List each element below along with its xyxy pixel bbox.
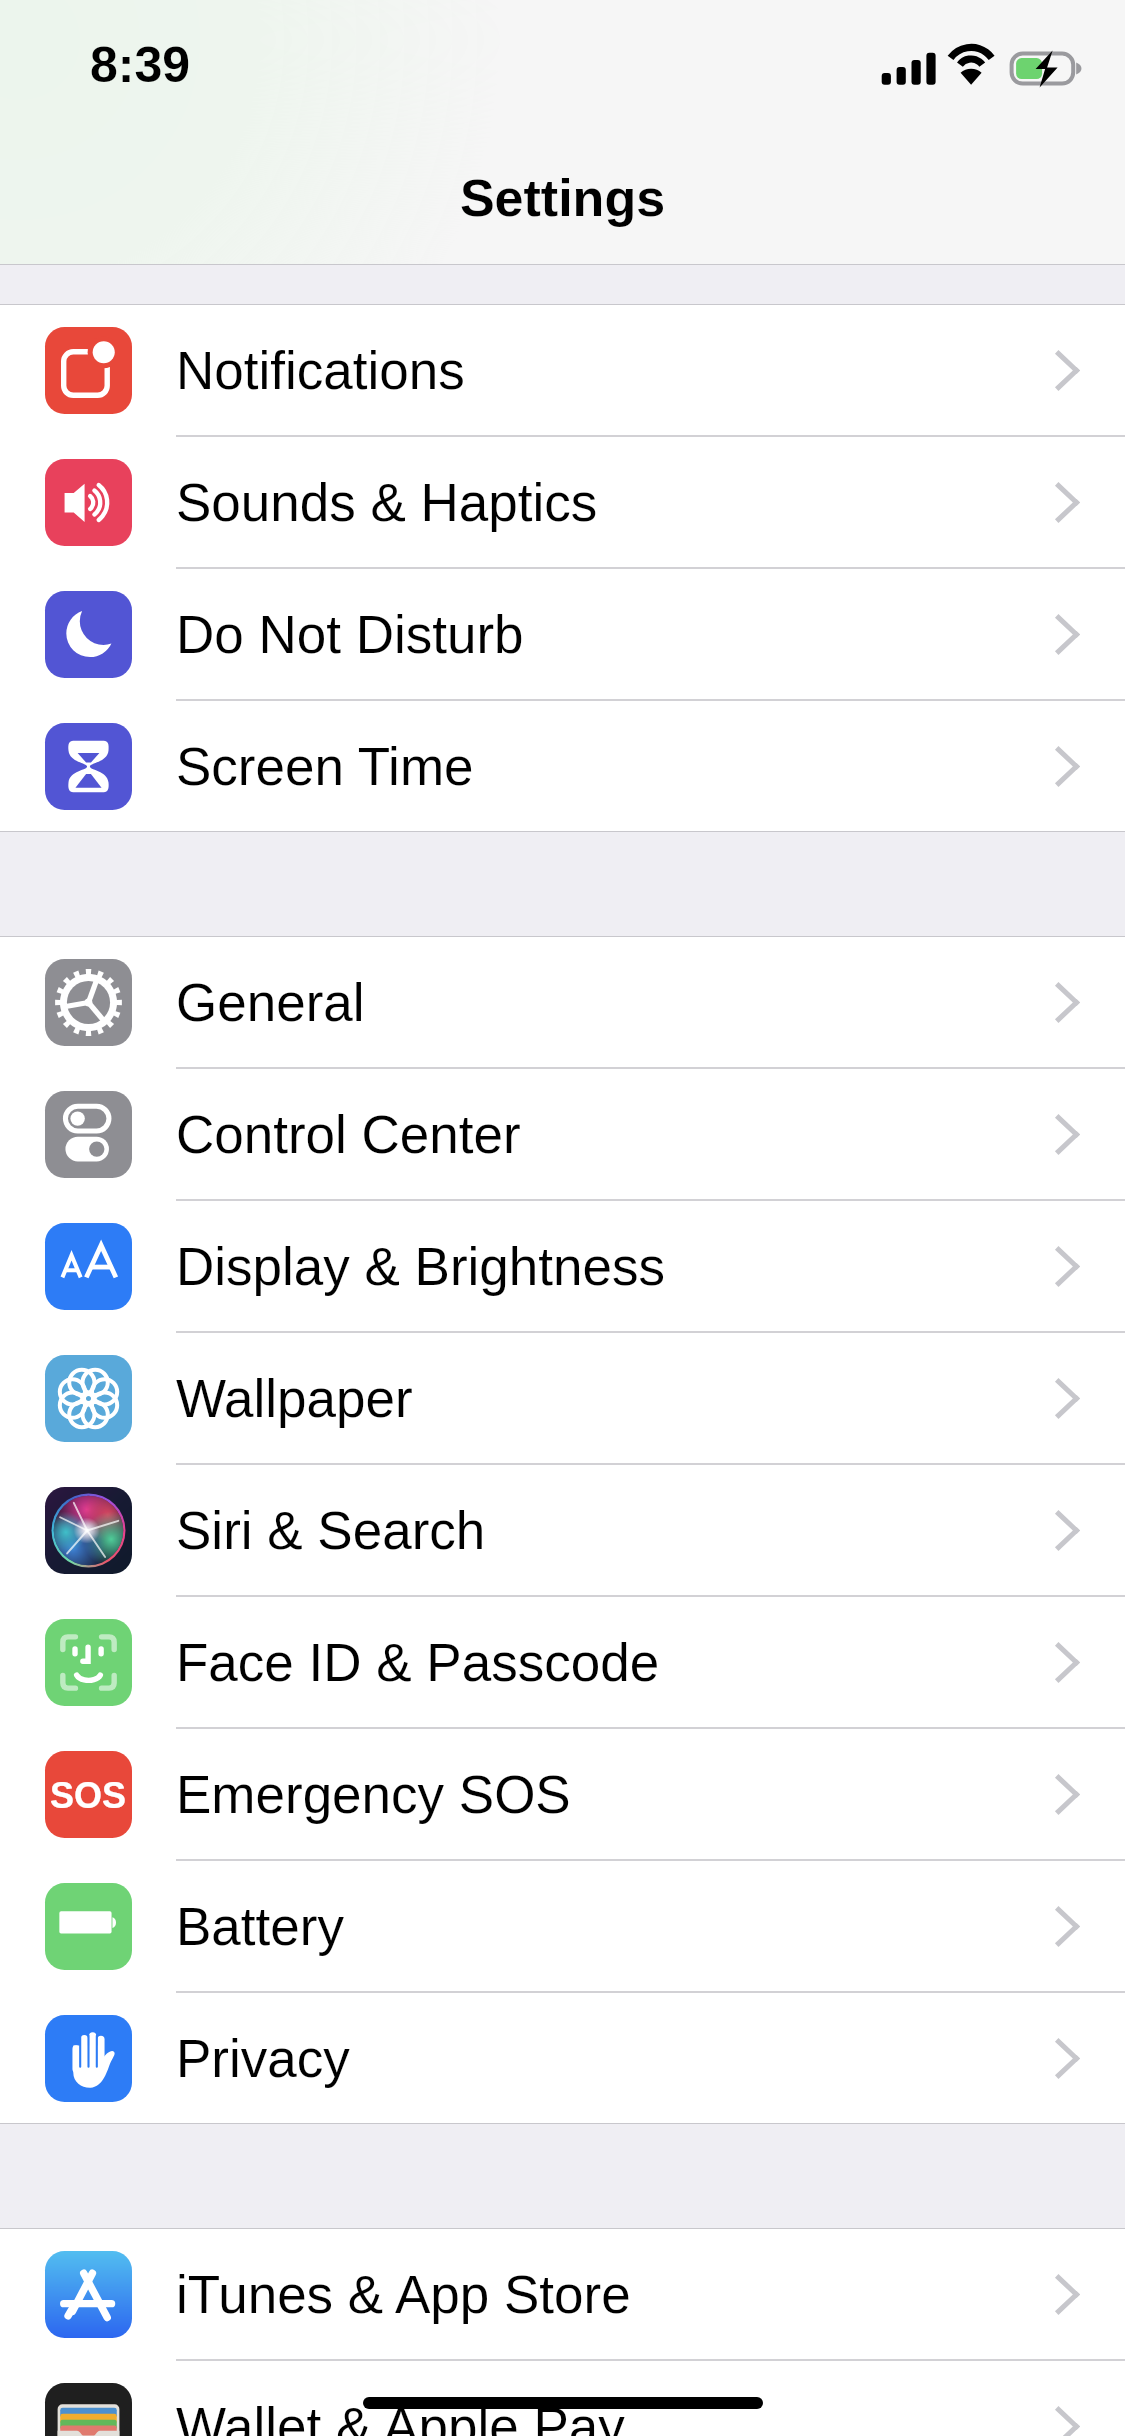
staticText: Do Not Disturb [176,605,524,664]
other: Cellular signal, Wi-Fi, battery charging [880,48,1085,86]
staticText: Settings [0,169,1125,227]
staticText: 8:39 [90,37,191,93]
staticText: Screen Time [176,737,474,796]
staticText: Face ID & Passcode [176,1633,660,1692]
staticText: Control Center [176,1105,521,1164]
button[interactable]: Screen Time [0,701,1125,831]
button[interactable]: iTunes & App Store [0,2229,1125,2359]
button[interactable]: Siri & Search [0,1465,1125,1595]
button[interactable]: Do Not Disturb [0,569,1125,699]
staticText: Emergency SOS [176,1765,571,1824]
button[interactable]: Notifications [0,305,1125,435]
button[interactable]: Privacy [0,1993,1125,2123]
staticText: General [176,973,365,1032]
staticText: Wallpaper [176,1369,413,1428]
staticText: Notifications [176,341,465,400]
staticText: Sounds & Haptics [176,473,598,532]
button[interactable]: Control Center [0,1069,1125,1199]
button[interactable]: Wallpaper [0,1333,1125,1463]
staticText: Battery [176,1897,344,1956]
button[interactable]: Wallet & Apple Pay [0,2361,1125,2436]
button[interactable]: Battery [0,1861,1125,1991]
staticText: iTunes & App Store [176,2265,631,2324]
staticText: SOS [50,1775,127,1815]
staticText: Privacy [176,2029,350,2088]
button[interactable]: SOS [0,1729,1125,1859]
button[interactable]: Display & Brightness [0,1201,1125,1331]
button[interactable]: Face ID & Passcode [0,1597,1125,1727]
button[interactable]: Sounds & Haptics [0,437,1125,567]
staticText: Wallet & Apple Pay [176,2397,625,2436]
button[interactable]: General [0,937,1125,1067]
staticText: Siri & Search [176,1501,486,1560]
staticText: Display & Brightness [176,1237,665,1296]
